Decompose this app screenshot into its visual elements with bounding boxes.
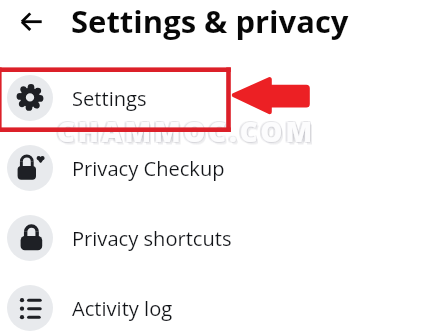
button[interactable]: Settings (0, 63, 432, 133)
staticText: CHAMMOC.COM (55, 114, 313, 151)
staticText: CHAMMOC.COM (59, 116, 317, 153)
button[interactable]: Privacy shortcuts (0, 203, 432, 273)
button[interactable]: Privacy Checkup (0, 133, 432, 203)
other: Privacy Checkup (7, 145, 53, 191)
other: Settings (7, 75, 53, 121)
other: Privacy shortcuts (7, 215, 53, 261)
staticText: CHAMMOC.COM (58, 114, 316, 151)
staticText: Settings & privacy (71, 0, 349, 42)
staticText: CHAMMOC.COM (59, 115, 317, 152)
staticText: Privacy Checkup (72, 155, 225, 182)
staticText: Activity log (72, 295, 173, 322)
staticText: CHAMMOC.COM (57, 113, 315, 150)
staticText: CHAMMOC.COM (58, 112, 316, 149)
button[interactable]: Activity log (0, 273, 432, 331)
staticText: CHAMMOC.COM (57, 114, 315, 151)
staticText: CHAMMOC.COM (55, 113, 313, 150)
staticText: Settings (72, 85, 147, 112)
staticText: CHAMMOC.COM (55, 112, 313, 149)
other: Activity log (7, 285, 53, 331)
staticText: CHAMMOC.COM (57, 112, 315, 149)
staticText: CHAMMOC.COM (58, 113, 316, 150)
button[interactable]: Back (11, 1, 51, 41)
staticText: Privacy shortcuts (72, 225, 232, 252)
